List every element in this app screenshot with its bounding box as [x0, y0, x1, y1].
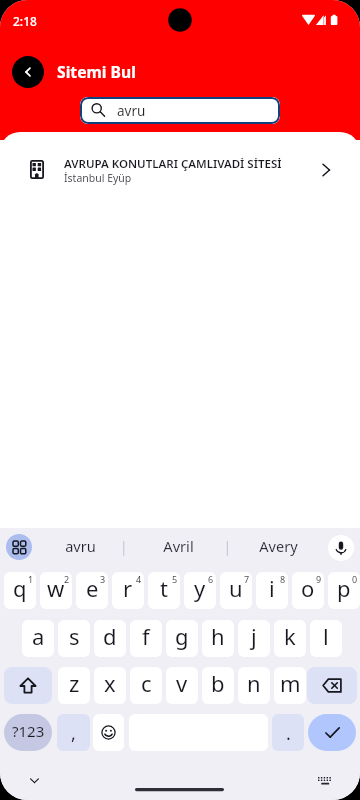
staticText: Avril: [163, 536, 194, 556]
staticText: 0: [352, 573, 358, 585]
staticText: i: [269, 573, 275, 603]
staticText: k: [284, 621, 296, 651]
staticText: w: [47, 573, 65, 603]
button[interactable]: Shift: [4, 667, 52, 704]
button[interactable]: AVRUPA KONUTLARI ÇAMLIVADİ SİTESİ: [0, 141, 360, 201]
staticText: 2:18: [13, 13, 37, 29]
button[interactable]: j: [238, 620, 270, 657]
button[interactable]: t: [148, 572, 180, 609]
button[interactable]: avru: [42, 527, 118, 565]
button[interactable]: d: [94, 620, 126, 657]
staticText: z: [69, 668, 80, 698]
staticText: avru: [117, 102, 146, 120]
button[interactable]: Back: [12, 56, 44, 88]
staticText: ,: [71, 721, 76, 746]
button[interactable]: m: [274, 667, 306, 704]
button[interactable]: y: [184, 572, 216, 609]
staticText: p: [337, 573, 351, 603]
button[interactable]: a: [22, 620, 54, 657]
button[interactable]: Voice input: [328, 535, 354, 561]
staticText: 6: [208, 573, 214, 585]
staticText: a: [32, 621, 45, 651]
staticText: l: [323, 621, 329, 651]
button[interactable]: w: [40, 572, 72, 609]
button[interactable]: l: [310, 620, 342, 657]
button[interactable]: ,: [57, 714, 90, 751]
staticText: .: [286, 721, 291, 746]
staticText: x: [104, 668, 116, 698]
staticText: ?123: [12, 721, 45, 741]
staticText: avru: [65, 536, 96, 556]
staticText: 9: [316, 573, 322, 585]
staticText: 2: [64, 573, 70, 585]
button[interactable]: ?123: [4, 714, 52, 751]
button[interactable]: Backspace: [307, 667, 357, 704]
button[interactable]: Keyboard options: [6, 534, 32, 560]
staticText: s: [69, 621, 80, 651]
button[interactable]: s: [58, 620, 90, 657]
staticText: e: [86, 573, 99, 603]
button[interactable]: .: [272, 714, 304, 751]
button[interactable]: u: [220, 572, 252, 609]
staticText: q: [13, 573, 27, 603]
button[interactable]: h: [202, 620, 234, 657]
staticText: f: [142, 621, 150, 651]
button[interactable]: k: [274, 620, 306, 657]
staticText: c: [141, 668, 152, 698]
button[interactable]: q: [4, 572, 36, 609]
button[interactable]: n: [238, 667, 270, 704]
staticText: 5: [172, 573, 178, 585]
button[interactable]: e: [76, 572, 108, 609]
staticText: r: [123, 573, 133, 603]
button[interactable]: r: [112, 572, 144, 609]
button[interactable]: p: [328, 572, 360, 609]
staticText: h: [211, 621, 225, 651]
staticText: g: [175, 621, 189, 651]
button[interactable]: Avril: [140, 527, 216, 565]
staticText: y: [194, 573, 206, 603]
button[interactable]: x: [94, 667, 126, 704]
staticText: İstanbul Eyüp: [64, 171, 132, 185]
staticText: j: [251, 621, 257, 651]
staticText: 1: [28, 573, 34, 585]
staticText: 8: [280, 573, 286, 585]
staticText: 4: [136, 573, 142, 585]
button[interactable]: avru: [80, 97, 280, 124]
staticText: b: [211, 668, 225, 698]
button[interactable]: f: [130, 620, 162, 657]
staticText: AVRUPA KONUTLARI ÇAMLIVADİ SİTESİ: [64, 156, 282, 172]
button[interactable]: z: [58, 667, 90, 704]
button[interactable]: i: [256, 572, 288, 609]
staticText: v: [176, 668, 188, 698]
staticText: n: [247, 668, 261, 698]
button[interactable]: v: [166, 667, 198, 704]
staticText: 3: [100, 573, 106, 585]
staticText: o: [301, 573, 315, 603]
button[interactable]: b: [202, 667, 234, 704]
staticText: Avery: [259, 536, 298, 556]
staticText: u: [229, 573, 243, 603]
button[interactable]: Avery: [240, 527, 316, 565]
button[interactable]: c: [130, 667, 162, 704]
button[interactable]: Enter: [308, 714, 356, 751]
button[interactable]: o: [292, 572, 324, 609]
staticText: t: [160, 573, 168, 603]
button[interactable]: Emoji: [93, 714, 124, 751]
staticText: d: [103, 621, 117, 651]
staticText: 7: [244, 573, 250, 585]
button[interactable]: g: [166, 620, 198, 657]
staticText: m: [280, 668, 301, 698]
staticText: Sitemi Bul: [57, 61, 136, 82]
button[interactable]: Hide keyboard: [22, 768, 47, 793]
